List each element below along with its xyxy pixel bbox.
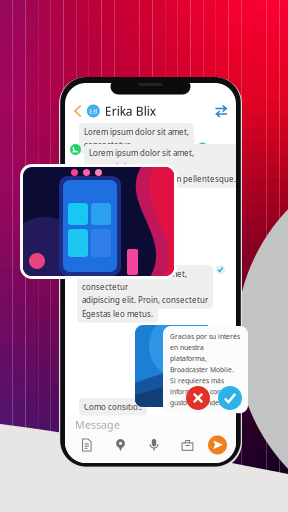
staticText: Lorem ipsum dolor sit amet, consectetur: [84, 126, 189, 150]
button[interactable]: Share location: [107, 435, 133, 455]
button[interactable]: Attach document: [74, 435, 100, 455]
staticText: Message: [75, 417, 120, 432]
button[interactable]: Take photo: [174, 435, 200, 455]
button[interactable]: Transfer conversation: [215, 104, 231, 117]
staticText: EB: [89, 107, 97, 115]
button[interactable]: Reject: [186, 386, 210, 410]
staticText: Gracias por su interés en nuestra plataf…: [170, 332, 241, 407]
staticText: Lorem ipsum dolor sit amet, consectetur …: [89, 147, 236, 184]
staticText: Como consitio..: [84, 401, 142, 412]
staticText: Egestas leo metus.: [82, 308, 153, 319]
staticText: Lorem ipsum dolor sit amet, consectetur …: [82, 268, 208, 305]
button[interactable]: Record voice message: [141, 435, 167, 455]
button[interactable]: Accept: [218, 386, 242, 410]
button[interactable]: Back: [70, 101, 87, 120]
staticText: Erika Blix: [105, 103, 156, 119]
button[interactable]: Send: [208, 435, 227, 454]
